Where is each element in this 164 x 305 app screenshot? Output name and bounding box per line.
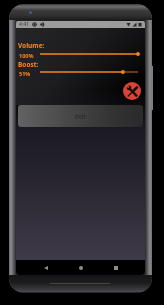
staticText: Volume: bbox=[18, 41, 45, 50]
button[interactable]: Back bbox=[38, 260, 54, 275]
button[interactable]: EXIT bbox=[18, 105, 143, 127]
staticText: 100% bbox=[19, 52, 34, 59]
staticText: 4:41 bbox=[19, 21, 29, 28]
staticText: EXIT bbox=[75, 113, 87, 120]
staticText: 51% bbox=[19, 70, 31, 77]
button[interactable]: Recents bbox=[108, 260, 124, 275]
button[interactable]: Tools disabled bbox=[123, 82, 141, 100]
staticText: Boost: bbox=[18, 60, 39, 69]
button[interactable]: Home bbox=[73, 260, 89, 275]
